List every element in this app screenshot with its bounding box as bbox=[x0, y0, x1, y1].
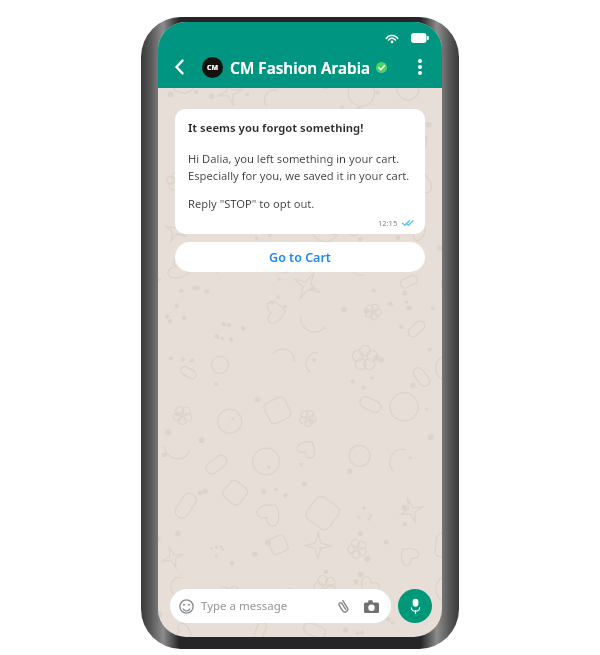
staticText: Reply "STOP" to opt out. bbox=[188, 196, 315, 211]
button[interactable]: More options bbox=[404, 51, 436, 83]
button[interactable]: Back bbox=[163, 50, 197, 84]
button[interactable]: Type a message bbox=[170, 589, 391, 623]
staticText: Go to Cart bbox=[269, 249, 331, 266]
button[interactable]: Attach bbox=[334, 597, 353, 616]
staticText: 12:15 bbox=[378, 218, 398, 228]
button[interactable]: It seems you forgot something! bbox=[175, 109, 425, 234]
staticText: Type a message bbox=[201, 598, 334, 614]
button[interactable]: Camera bbox=[362, 597, 381, 616]
staticText: CM bbox=[207, 63, 219, 73]
button[interactable]: CM Fashion Arabia bbox=[230, 57, 404, 78]
button[interactable]: Record voice message bbox=[398, 589, 432, 623]
button[interactable]: Go to Cart bbox=[175, 242, 425, 272]
staticText: CM Fashion Arabia bbox=[230, 57, 371, 78]
button[interactable]: Contact avatar bbox=[202, 57, 223, 78]
staticText: Hi Dalia, you left something in your car… bbox=[188, 151, 414, 183]
staticText: It seems you forgot something! bbox=[188, 120, 364, 135]
